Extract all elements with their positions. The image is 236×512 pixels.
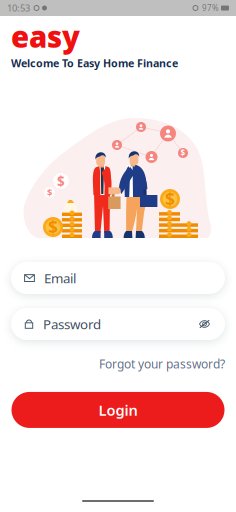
staticText: Login bbox=[98, 400, 137, 420]
staticText: $ bbox=[48, 215, 58, 238]
staticText: Email bbox=[44, 269, 76, 287]
staticText: $ bbox=[47, 186, 52, 199]
button[interactable]: Email bbox=[11, 262, 225, 294]
staticText: 10:53 bbox=[7, 2, 30, 14]
staticText: 97% bbox=[202, 3, 219, 13]
staticText: easy bbox=[11, 17, 80, 56]
staticText: $ bbox=[180, 148, 185, 158]
button[interactable]: Login bbox=[11, 392, 224, 428]
staticText: Forgot your password? bbox=[99, 356, 225, 372]
staticText: Password bbox=[43, 315, 101, 333]
button[interactable]: Forgot your password? bbox=[93, 354, 236, 374]
staticText: $ bbox=[57, 172, 65, 190]
staticText: Welcome To Easy Home Finance bbox=[11, 56, 178, 70]
staticText: $ bbox=[165, 187, 175, 210]
button[interactable]: Password bbox=[11, 308, 225, 340]
